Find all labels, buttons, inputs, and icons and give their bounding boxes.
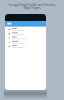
button[interactable] [5, 36, 46, 40]
other: Help [7, 23, 12, 26]
button[interactable]: Help [5, 21, 46, 27]
button[interactable] [5, 44, 46, 48]
staticText: In-app Help Guide and Service Map Pages [0, 2, 64, 10]
button[interactable] [5, 40, 46, 44]
button[interactable] [5, 32, 46, 36]
button[interactable] [5, 28, 46, 32]
